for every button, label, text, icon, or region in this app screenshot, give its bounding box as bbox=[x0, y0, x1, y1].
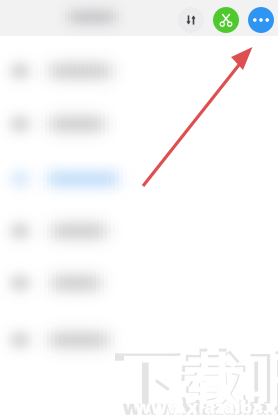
staticText: 下载吧 bbox=[113, 343, 278, 420]
button[interactable]: Cut bbox=[213, 7, 239, 33]
button[interactable]: Sort bbox=[178, 7, 204, 33]
staticText: www.xiazaiba.com bbox=[122, 394, 278, 420]
staticText: www.xiazaiba.com bbox=[135, 395, 278, 418]
staticText: 下载吧 bbox=[122, 346, 278, 420]
button[interactable]: More bbox=[248, 7, 274, 33]
